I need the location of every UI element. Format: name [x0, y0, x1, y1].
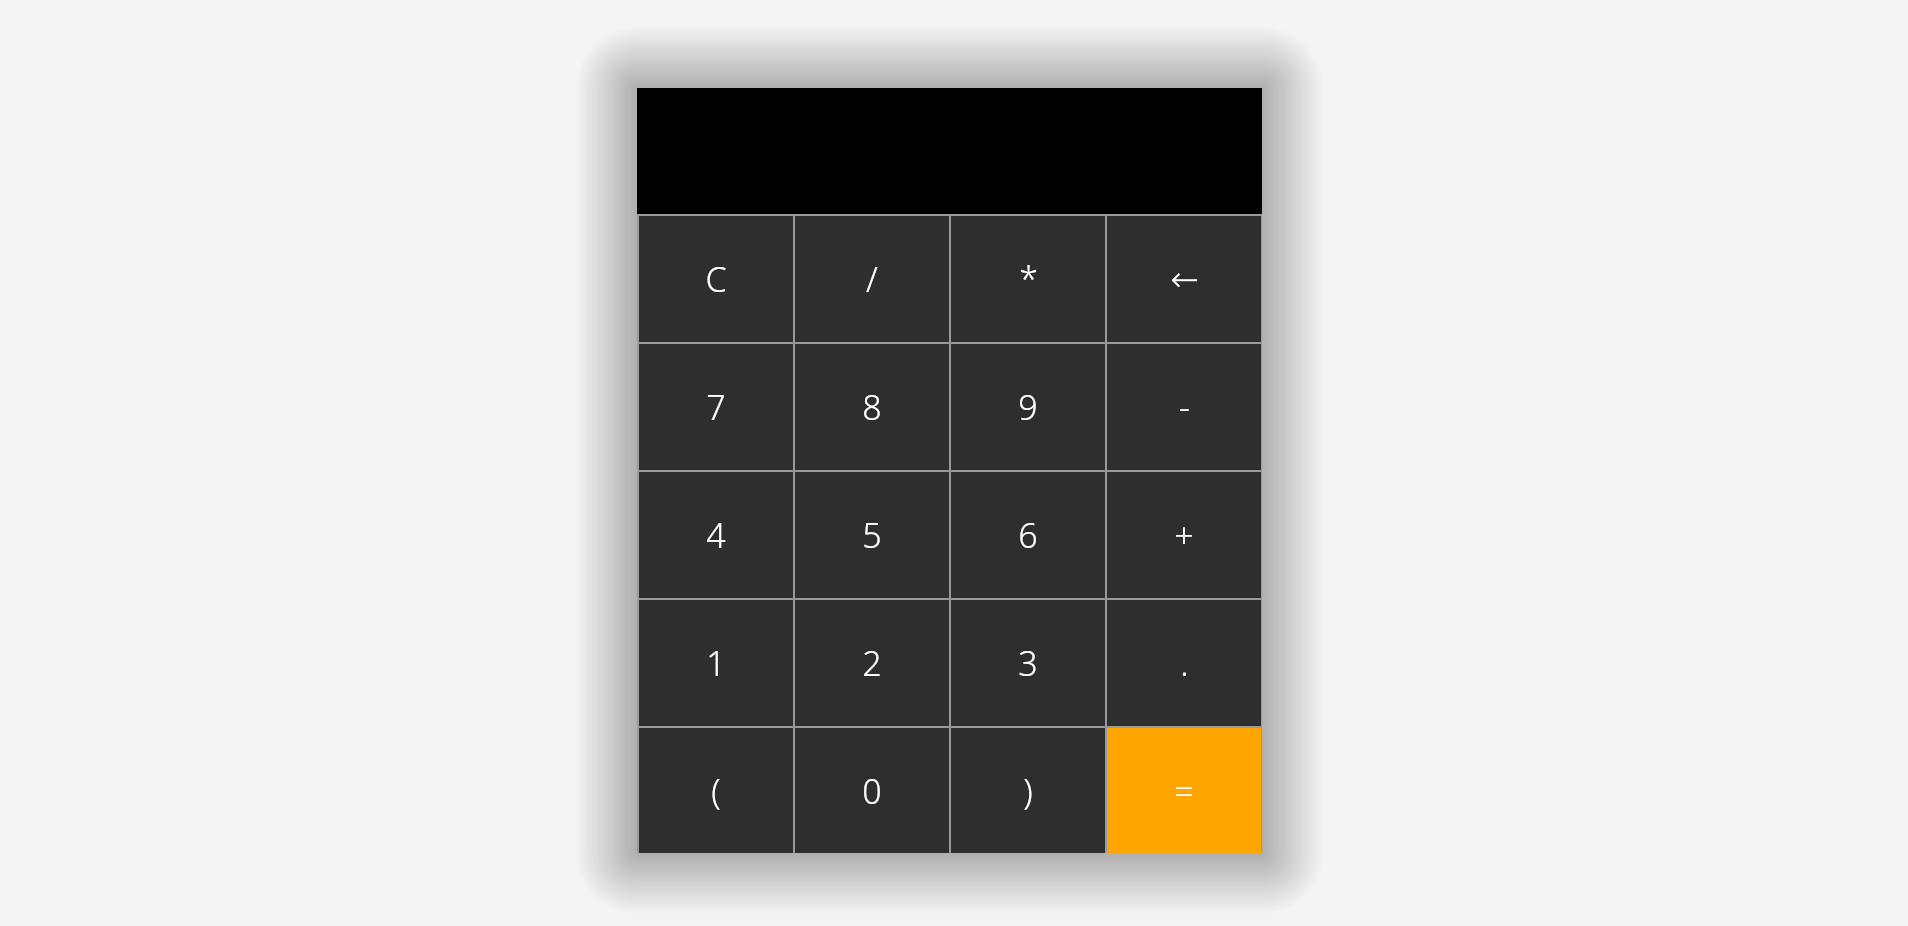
button[interactable]: 2 [795, 600, 949, 726]
button[interactable]: 6 [951, 472, 1105, 598]
button[interactable]: 0 [795, 728, 949, 853]
button[interactable]: 9 [951, 344, 1105, 470]
staticText: 7 [706, 384, 726, 430]
staticText: + [1174, 512, 1194, 558]
button[interactable]: Clear [639, 216, 793, 342]
staticText: 3 [1018, 640, 1038, 686]
button[interactable]: Multiply [951, 216, 1105, 342]
staticText: - [1179, 384, 1190, 430]
staticText: 6 [1018, 512, 1038, 558]
staticText: / [866, 256, 878, 302]
button[interactable]: 1 [639, 600, 793, 726]
staticText: ← [1170, 259, 1199, 299]
button[interactable]: Subtract [1107, 344, 1261, 470]
button[interactable]: Add [1107, 472, 1261, 598]
button[interactable]: 3 [951, 600, 1105, 726]
button[interactable]: 4 [639, 472, 793, 598]
staticText: = [1174, 768, 1194, 814]
button[interactable]: Equals [1107, 728, 1261, 853]
staticText: 5 [862, 512, 882, 558]
button[interactable]: 5 [795, 472, 949, 598]
button[interactable]: Open parenthesis [639, 728, 793, 853]
staticText: C [705, 256, 727, 302]
staticText: * [1019, 256, 1038, 302]
button[interactable]: Decimal point [1107, 600, 1261, 726]
staticText: ) [1023, 768, 1033, 814]
staticText: 8 [862, 384, 882, 430]
staticText: ( [711, 768, 721, 814]
button[interactable]: Backspace [1107, 216, 1261, 342]
staticText: 0 [862, 768, 882, 814]
staticText: 4 [706, 512, 726, 558]
button[interactable]: Close parenthesis [951, 728, 1105, 853]
staticText: 9 [1018, 384, 1038, 430]
button[interactable]: Divide [795, 216, 949, 342]
button[interactable]: 7 [639, 344, 793, 470]
button[interactable]: 8 [795, 344, 949, 470]
staticText: 1 [706, 640, 726, 686]
staticText: . [1180, 640, 1189, 686]
staticText: 2 [862, 640, 882, 686]
